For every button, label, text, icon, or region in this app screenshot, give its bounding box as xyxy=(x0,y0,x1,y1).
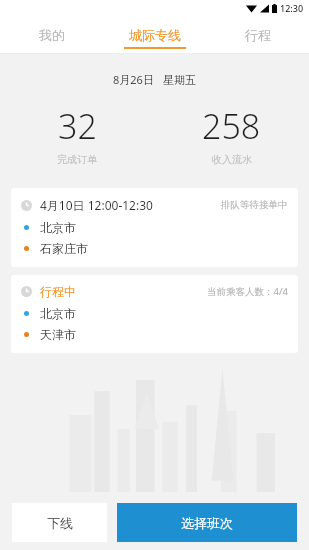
staticText: 8月26日 xyxy=(113,72,154,87)
staticText: 行程中 xyxy=(40,284,76,299)
staticText: 天津市 xyxy=(40,327,76,342)
button[interactable]: 城际专线 xyxy=(103,16,206,54)
staticText: 下线 xyxy=(47,515,73,531)
staticText: 我的 xyxy=(39,27,65,43)
staticText: 收入流水 xyxy=(212,153,252,166)
staticText: 完成订单 xyxy=(57,153,97,166)
staticText: 排队等待接单中 xyxy=(221,199,288,211)
staticText: 32 xyxy=(58,103,97,149)
button[interactable]: 行程 xyxy=(206,16,309,54)
staticText: 258 xyxy=(202,103,261,149)
staticText: 行程 xyxy=(245,27,271,43)
button[interactable]: 选择班次 xyxy=(117,503,297,542)
button[interactable]: 下线 xyxy=(12,503,107,542)
staticText: 星期五 xyxy=(163,73,196,87)
staticText: 城际专线 xyxy=(129,27,181,43)
staticText: 石家庄市 xyxy=(40,241,88,256)
staticText: 12:30 xyxy=(280,2,304,14)
staticText: 北京市 xyxy=(40,306,76,321)
staticText: 4月10日 12:00-12:30 xyxy=(40,197,153,213)
button[interactable]: 4月10日 12:00-12:30 xyxy=(11,188,298,267)
staticText: 北京市 xyxy=(40,220,76,235)
staticText: 当前乘客人数：4/4 xyxy=(207,285,288,298)
button[interactable]: 我的 xyxy=(0,16,103,54)
staticText: 选择班次 xyxy=(181,515,233,531)
button[interactable]: 行程中 xyxy=(11,275,298,353)
